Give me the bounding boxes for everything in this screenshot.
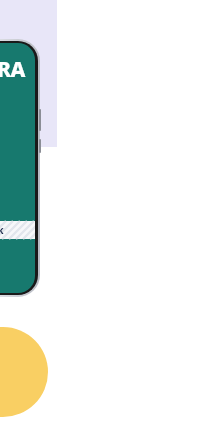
staticText: GO BACK [0,224,4,236]
staticText: HOORAY! [0,55,35,113]
button[interactable]: GO BACK [0,221,35,239]
